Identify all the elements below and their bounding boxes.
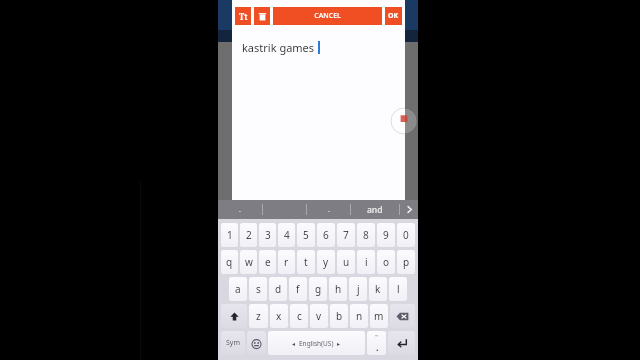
button[interactable]: o (377, 250, 395, 274)
button[interactable]: w (240, 250, 257, 274)
staticText: 0 (403, 228, 409, 242)
staticText: y (323, 255, 329, 269)
staticText: kastrik games (242, 40, 315, 55)
button[interactable]: Text formatting (235, 7, 251, 25)
staticText: q (226, 255, 233, 269)
staticText: 2 (246, 228, 252, 242)
staticText: z (256, 309, 261, 323)
staticText: b (336, 309, 343, 323)
button[interactable]: c (290, 304, 308, 328)
staticText: Sym (226, 338, 240, 348)
staticText: j (357, 282, 360, 296)
staticText: c (297, 309, 302, 323)
staticText: l (397, 282, 400, 296)
staticText: 7 (343, 228, 349, 242)
button[interactable]: Shift (221, 304, 247, 328)
button[interactable]: 1 (221, 223, 238, 247)
button[interactable]: k (369, 277, 387, 301)
staticText: . (239, 205, 241, 215)
staticText: Tt (239, 11, 248, 22)
button[interactable]: Enter (388, 331, 415, 355)
button[interactable]: and (351, 200, 399, 219)
staticText: o (383, 255, 390, 269)
button[interactable]: z (249, 304, 268, 328)
button[interactable]: f (289, 277, 307, 301)
staticText: . (328, 205, 330, 215)
staticText: u (343, 255, 350, 269)
button[interactable]: t (297, 250, 315, 274)
button[interactable]: u (337, 250, 355, 274)
button[interactable]: 0 (397, 223, 415, 247)
staticText: OK (388, 11, 399, 21)
button[interactable]: 5 (297, 223, 315, 247)
button[interactable]: r (278, 250, 295, 274)
button[interactable]: . (218, 200, 262, 219)
button[interactable]: CANCEL (273, 7, 382, 25)
button[interactable]: 4 (278, 223, 295, 247)
staticText: 8 (363, 228, 369, 242)
button[interactable]: q (221, 250, 238, 274)
button[interactable]: Period (367, 331, 386, 355)
button[interactable]: v (310, 304, 328, 328)
button[interactable]: Emoji (247, 331, 266, 355)
button[interactable]: h (329, 277, 347, 301)
button[interactable]: m (370, 304, 388, 328)
button[interactable]: e (259, 250, 276, 274)
staticText: n (356, 309, 363, 323)
button[interactable]: 7 (337, 223, 355, 247)
staticText: d (275, 282, 282, 296)
button[interactable]: Sym (221, 331, 245, 355)
staticText: i (365, 255, 368, 269)
button[interactable]: Stop recording (391, 108, 417, 134)
staticText: ◂ (292, 340, 296, 347)
button[interactable]: a (229, 277, 247, 301)
staticText: 3 (265, 228, 271, 242)
staticText: m (374, 309, 384, 323)
button[interactable]: i (357, 250, 375, 274)
button[interactable]: g (309, 277, 327, 301)
staticText: h (335, 282, 342, 296)
button[interactable]: 9 (377, 223, 395, 247)
staticText: g (315, 282, 322, 296)
staticText: and (367, 204, 383, 216)
staticText: 1 (227, 228, 233, 242)
button[interactable]: n (350, 304, 368, 328)
staticText: 5 (303, 228, 309, 242)
staticText: t (304, 255, 308, 269)
staticText: f (296, 282, 300, 296)
staticText: 6 (323, 228, 329, 242)
staticText: ▸ (337, 340, 341, 347)
staticText: English(US) (299, 339, 334, 348)
button[interactable]: Space (268, 331, 365, 355)
button[interactable]: p (397, 250, 415, 274)
button[interactable]: 6 (317, 223, 335, 247)
staticText: w (245, 255, 253, 269)
staticText: . (376, 341, 379, 353)
button[interactable]: d (269, 277, 287, 301)
button[interactable]: Backspace (390, 304, 415, 328)
staticText: 9 (383, 228, 389, 242)
button[interactable]: OK (385, 7, 402, 25)
staticText: k (375, 282, 381, 296)
button[interactable]: 8 (357, 223, 375, 247)
button[interactable]: 2 (240, 223, 257, 247)
button[interactable]: j (349, 277, 367, 301)
staticText: x (276, 309, 282, 323)
staticText: v (316, 309, 322, 323)
button[interactable]: l (389, 277, 407, 301)
button[interactable]: b (330, 304, 348, 328)
button[interactable]: More suggestions (400, 200, 418, 219)
button[interactable]: s (249, 277, 267, 301)
button[interactable]: . (307, 200, 350, 219)
staticText: CANCEL (314, 11, 341, 21)
staticText: ''' (375, 334, 379, 341)
staticText: 4 (284, 228, 290, 242)
button[interactable]: y (317, 250, 335, 274)
button[interactable]: x (270, 304, 288, 328)
staticText: e (265, 255, 271, 269)
button[interactable]: Delete (254, 7, 270, 25)
button[interactable]: 3 (259, 223, 276, 247)
staticText: s (256, 282, 261, 296)
staticText: p (403, 255, 410, 269)
